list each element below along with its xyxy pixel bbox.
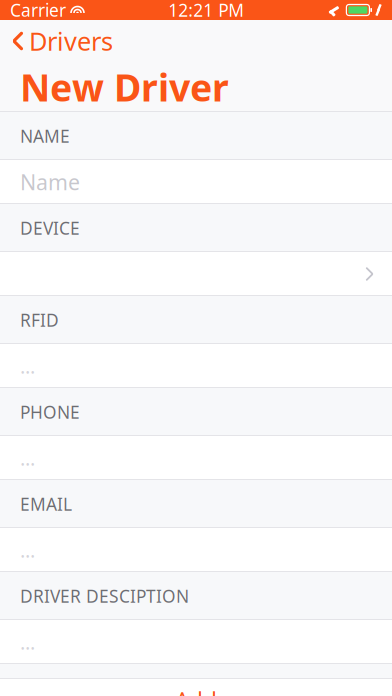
- staticText: NAME: [20, 124, 70, 147]
- button[interactable]: ...: [0, 436, 392, 480]
- button[interactable]: Name: [0, 160, 392, 204]
- staticText: DEVICE: [20, 216, 80, 239]
- staticText: Name: [20, 168, 80, 196]
- staticText: ...: [20, 629, 35, 655]
- button[interactable]: ...: [0, 528, 392, 572]
- button[interactable]: Drivers: [2, 18, 123, 64]
- staticText: ...: [20, 353, 35, 379]
- staticText: DRIVER DESCIPTION: [20, 584, 189, 607]
- button[interactable]: Select device: [0, 252, 392, 296]
- staticText: ...: [20, 537, 35, 563]
- staticText: RFID: [20, 308, 59, 331]
- staticText: New Driver: [20, 62, 229, 112]
- button[interactable]: ...: [0, 344, 392, 388]
- staticText: [340, 0, 346, 25]
- staticText: [65, 0, 71, 25]
- button[interactable]: Add: [0, 678, 392, 696]
- staticText: 12:21 PM: [168, 0, 244, 21]
- staticText: [370, 0, 376, 25]
- staticText: Carrier: [10, 0, 66, 21]
- staticText: PHONE: [20, 400, 80, 423]
- staticText: EMAIL: [20, 492, 72, 515]
- staticText: ...: [20, 445, 35, 471]
- staticText: Drivers: [29, 24, 113, 58]
- staticText: Add: [175, 685, 217, 696]
- button[interactable]: ...: [0, 620, 392, 664]
